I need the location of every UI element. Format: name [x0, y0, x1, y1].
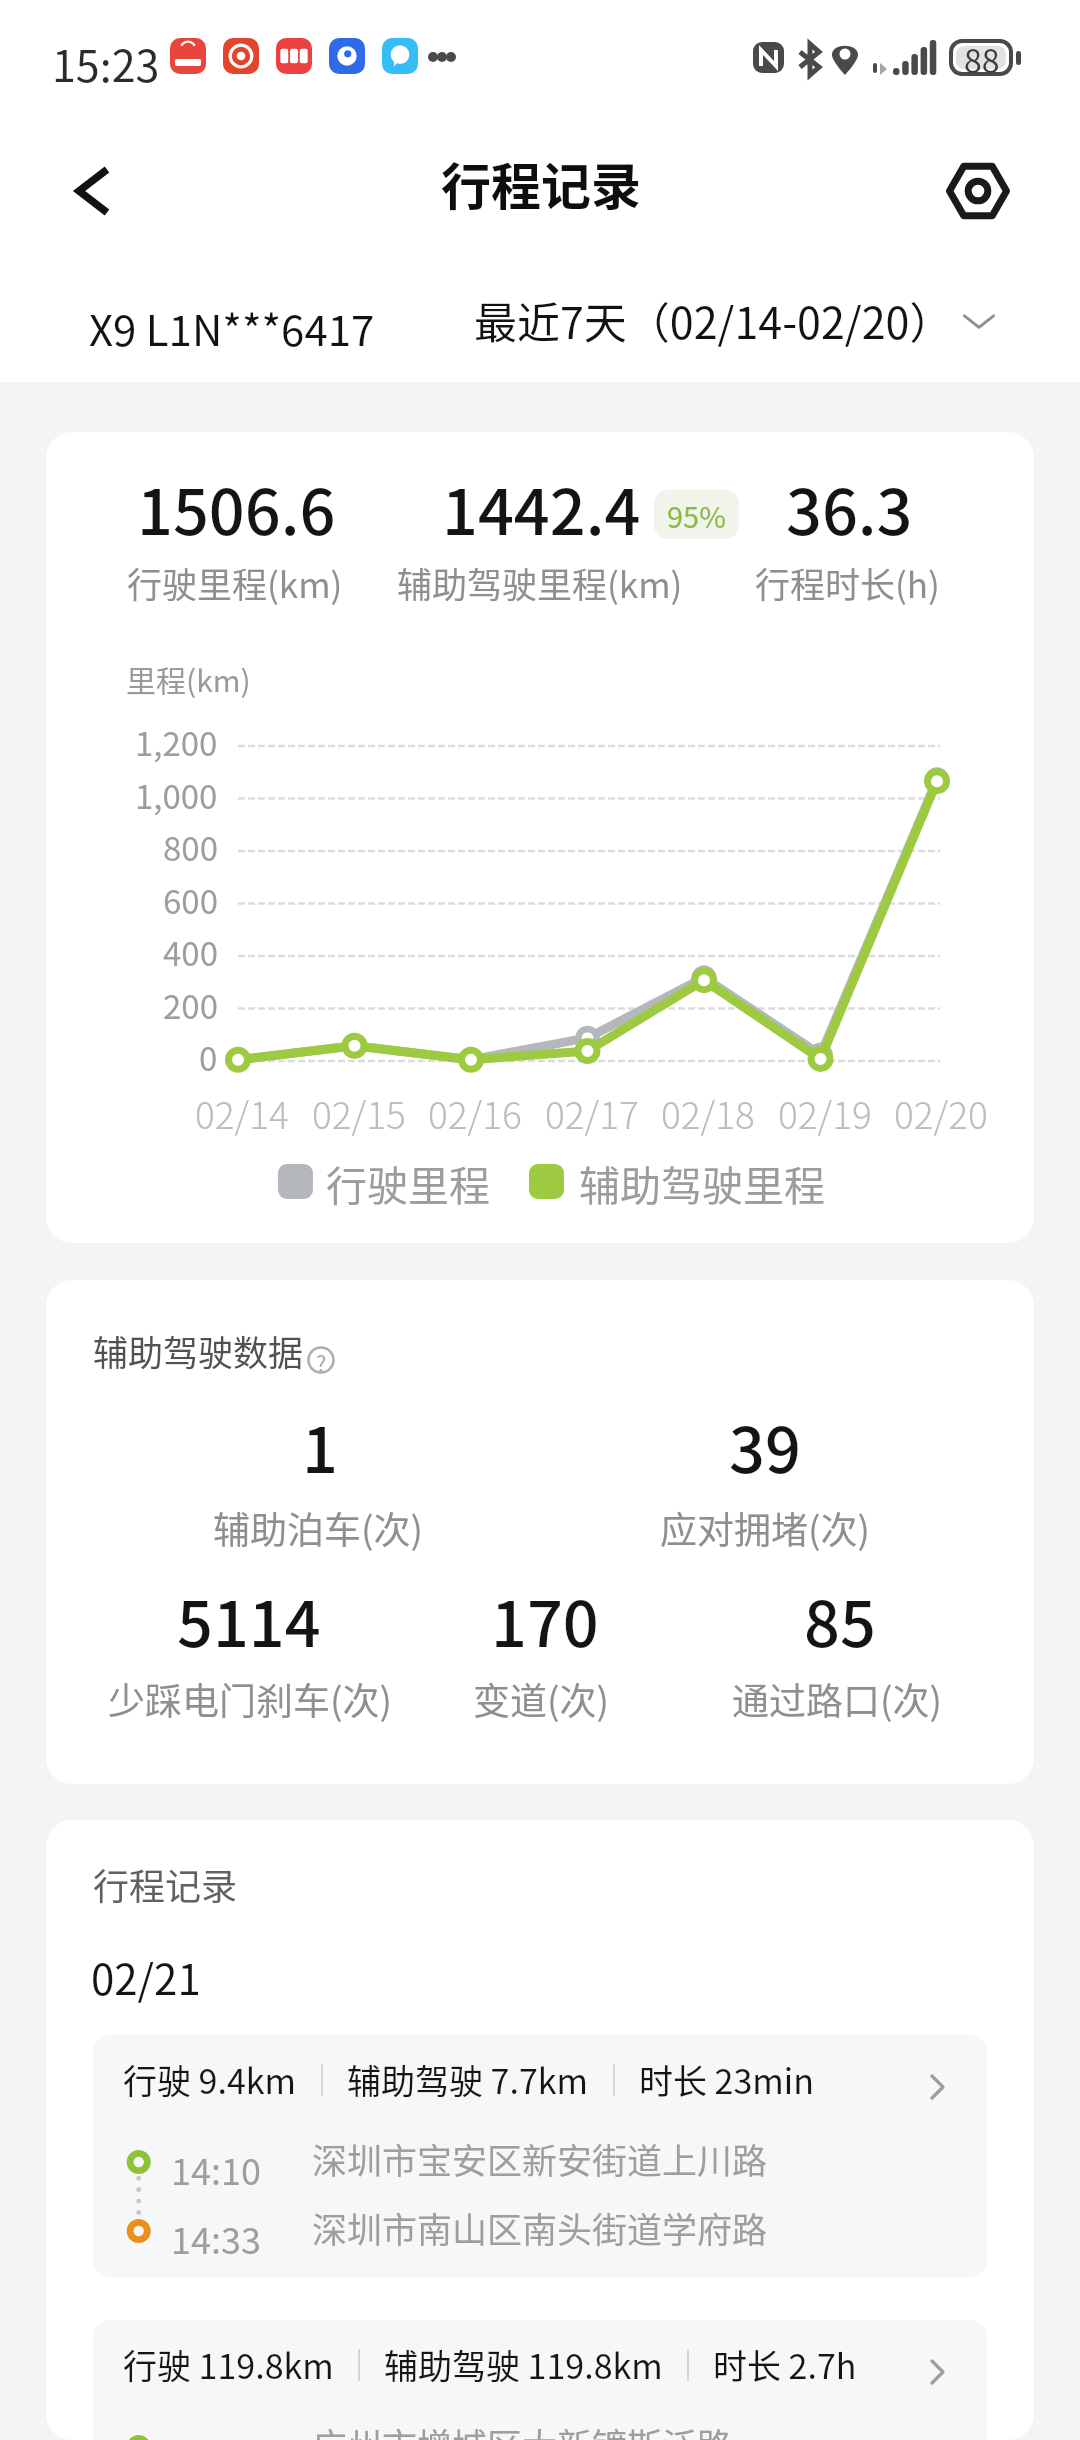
- staticText: X9 L1N***6417: [89, 297, 375, 358]
- button[interactable]: 最近7天（02/14-02/20）: [474, 289, 1005, 351]
- staticText: 1,200: [135, 718, 218, 766]
- staticText: 800: [163, 823, 218, 871]
- staticText: 14:10: [171, 2143, 261, 2195]
- staticText: 02/21: [91, 1946, 201, 2007]
- staticText: ?: [316, 1346, 327, 1374]
- staticText: 时长 23min: [639, 2055, 814, 2104]
- staticText: 0: [199, 1033, 218, 1081]
- staticText: 行驶里程(km): [127, 557, 343, 608]
- staticText: 行程记录: [441, 147, 641, 219]
- staticText: 行驶里程: [326, 1153, 490, 1212]
- staticText: 02/17: [545, 1086, 639, 1140]
- staticText: 辅助驾驶 119.8km: [384, 2340, 663, 2389]
- staticText: 600: [163, 876, 218, 924]
- staticText: 02/15: [312, 1086, 406, 1140]
- staticText: 广州市增城区大新镀斯泛路: [312, 2418, 733, 2440]
- button[interactable]: 行驶 119.8km: [93, 2320, 987, 2440]
- staticText: 170: [491, 1574, 599, 1665]
- staticText: 行驶 9.4km: [123, 2055, 297, 2104]
- staticText: 里程(km): [126, 657, 251, 700]
- staticText: 02/20: [894, 1086, 988, 1140]
- staticText: 1: [302, 1400, 338, 1491]
- staticText: 39: [729, 1400, 801, 1491]
- staticText: 14:33: [171, 2212, 261, 2264]
- staticText: 辅助驾驶 7.7km: [347, 2055, 589, 2104]
- staticText: 95%: [667, 494, 726, 536]
- button[interactable]: Settings: [935, 148, 1021, 234]
- staticText: 行程时长(h): [755, 557, 940, 608]
- staticText: 辅助泊车(次): [213, 1501, 424, 1555]
- staticText: 少踩电门刹车(次): [108, 1672, 393, 1726]
- staticText: 400: [163, 928, 218, 976]
- staticText: 应对拥堵(次): [660, 1501, 871, 1555]
- staticText: 36.3: [786, 462, 913, 553]
- staticText: 1442.4: [442, 462, 641, 553]
- staticText: 85: [804, 1574, 876, 1665]
- staticText: 5114: [177, 1574, 321, 1665]
- staticText: 深圳市宝安区新安街道上川路: [312, 2133, 768, 2184]
- staticText: 02/19: [778, 1086, 872, 1140]
- staticText: 辅助驾驶里程(km): [397, 557, 683, 608]
- staticText: 时长 2.7h: [713, 2340, 857, 2389]
- staticText: 02/16: [428, 1086, 522, 1140]
- staticText: 200: [163, 981, 218, 1029]
- staticText: 最近7天（02/14-02/20）: [474, 289, 953, 351]
- staticText: 辅助驾驶里程: [579, 1153, 825, 1212]
- staticText: 15:23: [52, 32, 160, 94]
- staticText: 行程记录: [93, 1858, 238, 1910]
- button[interactable]: Back: [50, 148, 136, 234]
- staticText: 变道(次): [473, 1672, 610, 1726]
- staticText: 1,000: [135, 771, 218, 819]
- staticText: 1506.6: [137, 462, 336, 553]
- button[interactable]: 行驶 9.4km: [93, 2035, 987, 2277]
- staticText: 深圳市南山区南头街道学府路: [312, 2202, 768, 2253]
- staticText: 辅助驾驶数据: [93, 1325, 304, 1376]
- staticText: 02/18: [661, 1086, 755, 1140]
- staticText: 行驶 119.8km: [123, 2340, 334, 2389]
- staticText: 通过路口(次): [732, 1672, 943, 1726]
- staticText: 02/14: [195, 1086, 289, 1140]
- button[interactable]: About assisted driving data: [307, 1346, 335, 1374]
- staticText: 88: [964, 36, 1000, 73]
